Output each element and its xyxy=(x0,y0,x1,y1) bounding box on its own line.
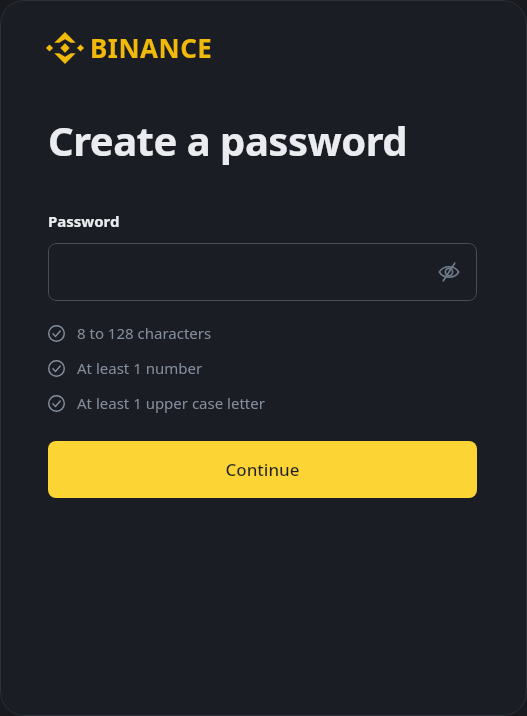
staticText: Continue xyxy=(225,458,300,481)
staticText: BINANCE xyxy=(90,30,213,65)
staticText: Create a password xyxy=(48,113,408,167)
button[interactable]: Show password xyxy=(435,258,463,286)
staticText: At least 1 number xyxy=(77,358,203,378)
button[interactable]: Continue xyxy=(48,441,477,498)
staticText: 8 to 128 characters xyxy=(77,323,212,343)
staticText: Password xyxy=(48,211,120,231)
staticText: At least 1 upper case letter xyxy=(77,393,265,413)
button[interactable]: Show password xyxy=(48,243,477,301)
